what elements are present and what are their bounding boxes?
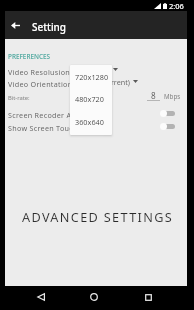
button[interactable]: Home bbox=[79, 285, 108, 309]
button[interactable]: Toggle bbox=[160, 121, 180, 133]
staticText: Show Screen Touches bbox=[8, 123, 86, 133]
button[interactable]: Back bbox=[26, 285, 55, 309]
button[interactable]: Recents bbox=[134, 285, 163, 309]
staticText: Bit-rate: bbox=[8, 94, 30, 102]
staticText: 720x1280 bbox=[75, 72, 109, 82]
staticText: ADVANCED SETTINGS bbox=[22, 208, 174, 225]
button[interactable]: Toggle bbox=[160, 108, 180, 120]
staticText: PREFERENCES bbox=[8, 52, 51, 61]
button[interactable]: Select resolution bbox=[78, 64, 118, 75]
button[interactable]: 360x640 bbox=[70, 111, 112, 133]
button[interactable]: Select orientation bbox=[83, 76, 138, 87]
staticText: 480x720 bbox=[75, 94, 104, 104]
staticText: Setting bbox=[32, 20, 67, 34]
button[interactable]: 480x720 bbox=[70, 88, 112, 110]
staticText: Mbps bbox=[164, 92, 181, 100]
button[interactable]: 720x1280 bbox=[70, 66, 112, 88]
staticText: Video Orientation bbox=[8, 79, 73, 89]
staticText: Auto (current) bbox=[83, 77, 130, 87]
staticText: 8 bbox=[151, 90, 156, 101]
staticText: Screen Recoder Audio bbox=[8, 110, 88, 120]
staticText: Video Resolusion bbox=[8, 67, 71, 77]
button[interactable]: Bit rate bbox=[145, 90, 193, 103]
button[interactable]: Back bbox=[5, 11, 26, 39]
staticText: 2:06 bbox=[169, 1, 184, 11]
staticText: 360x640 bbox=[75, 117, 104, 127]
